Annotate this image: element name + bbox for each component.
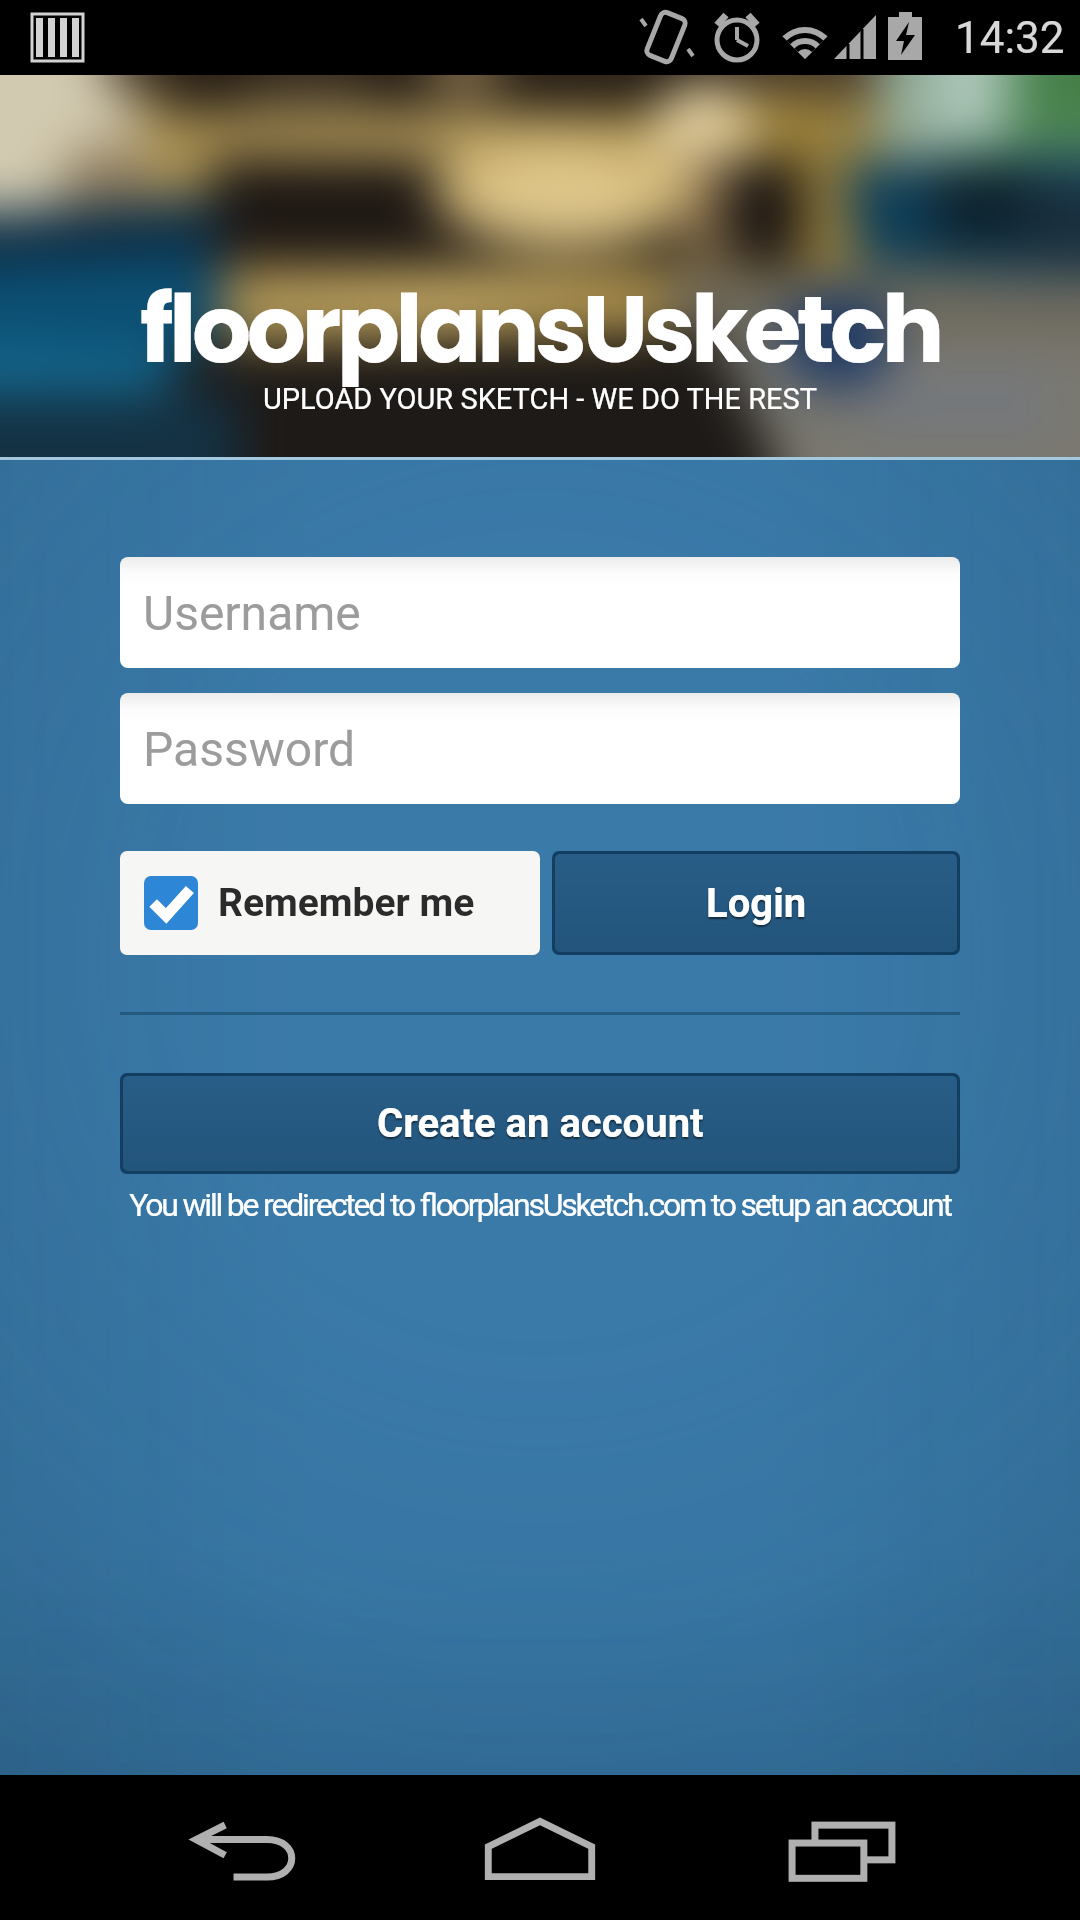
button[interactable]: Login — [555, 854, 957, 952]
staticText: UPLOAD YOUR SKETCH - WE DO THE REST — [263, 382, 818, 416]
staticText: Remember me — [218, 880, 475, 926]
staticText: Login — [706, 880, 807, 927]
staticText: Username — [143, 585, 361, 641]
button[interactable]: Home — [450, 1776, 630, 1920]
button[interactable]: Password — [120, 693, 960, 804]
button[interactable]: Recent apps — [752, 1779, 932, 1920]
button[interactable]: Back — [156, 1780, 336, 1920]
staticText: You will be redirected to floorplansUske… — [120, 1186, 960, 1224]
staticText: Password — [143, 721, 356, 777]
button[interactable]: Username — [120, 557, 960, 668]
staticText: floorplansUsketch — [140, 264, 940, 394]
staticText: 14:32 — [955, 12, 1065, 64]
button[interactable]: Remember me — [120, 851, 540, 955]
button[interactable]: Create an account — [123, 1076, 957, 1171]
staticText: Create an account — [377, 1100, 704, 1147]
